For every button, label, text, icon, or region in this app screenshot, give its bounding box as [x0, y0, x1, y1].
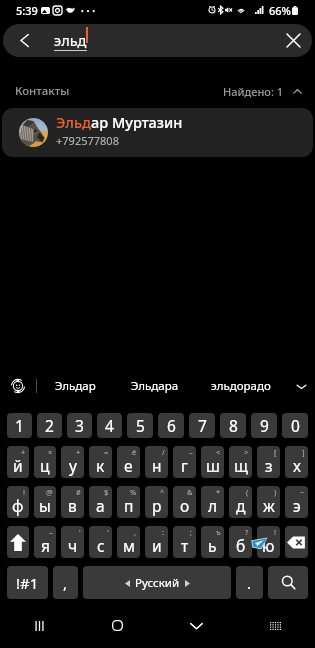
staticText: 5:39	[16, 3, 38, 18]
staticText: м	[123, 535, 135, 556]
button[interactable]: Shift	[7, 526, 29, 558]
button[interactable]: /	[145, 446, 168, 478]
staticText: !	[23, 487, 26, 497]
staticText: 6	[167, 415, 176, 436]
staticText: эльд	[54, 30, 87, 50]
staticText: 66%	[269, 3, 291, 18]
staticText: ,	[134, 527, 137, 537]
staticText: к	[96, 455, 105, 476]
button[interactable]: *	[201, 486, 224, 518]
staticText: Эльдар Муртазин	[56, 112, 183, 132]
button[interactable]: '	[89, 526, 112, 558]
staticText: ;	[190, 527, 193, 537]
button[interactable]: Backspace	[285, 526, 308, 558]
button[interactable]: >	[229, 446, 252, 478]
staticText: щ	[234, 455, 248, 476]
button[interactable]: Recents	[0, 603, 78, 648]
staticText: ,	[63, 573, 68, 593]
button[interactable]: More suggestions	[287, 370, 315, 402]
button[interactable]: 6	[158, 413, 184, 438]
button[interactable]: –	[173, 446, 196, 478]
staticText: ё	[132, 447, 137, 457]
button[interactable]: 5	[127, 413, 153, 438]
button[interactable]: !#1	[7, 566, 48, 599]
button[interactable]: !	[257, 526, 280, 558]
button[interactable]: %	[117, 486, 140, 518]
button[interactable]: 8	[220, 413, 246, 438]
button[interactable]: 2	[37, 413, 62, 438]
button[interactable]: (	[229, 486, 252, 518]
button[interactable]: Hide keyboard	[157, 603, 236, 648]
button[interactable]: :	[145, 526, 168, 558]
staticText: [	[274, 447, 277, 457]
staticText: ×	[48, 447, 53, 457]
button[interactable]: 7	[189, 413, 215, 438]
staticText: е	[124, 455, 133, 476]
button[interactable]: &	[173, 486, 196, 518]
button[interactable]: 9	[251, 413, 277, 438]
staticText: Эльдара	[131, 378, 179, 394]
button[interactable]: +	[61, 446, 84, 478]
button[interactable]: #	[61, 486, 84, 518]
button[interactable]: @	[34, 486, 56, 518]
button[interactable]: !	[7, 486, 29, 518]
button[interactable]: 0	[282, 413, 308, 438]
button[interactable]: Эльдара	[114, 370, 195, 402]
staticText: +	[76, 447, 81, 457]
staticText: %	[130, 487, 137, 497]
staticText: Найдено: 1	[223, 84, 284, 99]
button[interactable]: Back	[3, 24, 45, 57]
staticText: 4	[105, 415, 114, 436]
staticText: с	[97, 535, 105, 556]
button[interactable]: '	[61, 526, 84, 558]
button[interactable]: ?	[229, 526, 252, 558]
staticText: (	[246, 487, 249, 497]
staticText: ы	[39, 495, 51, 516]
staticText: я	[41, 535, 50, 556]
button[interactable]: Emoji	[0, 370, 36, 402]
staticText: 1	[15, 415, 24, 436]
staticText: Русский	[135, 575, 180, 591]
button[interactable]: Home	[78, 603, 157, 648]
button[interactable]: ×	[34, 446, 56, 478]
button[interactable]: эльдорадо	[195, 370, 287, 402]
button[interactable]: ^	[145, 486, 168, 518]
staticText: х	[293, 455, 301, 476]
button[interactable]: 1	[7, 413, 32, 438]
button[interactable]: ,	[53, 566, 78, 599]
staticText: 3	[75, 415, 84, 436]
button[interactable]: <	[201, 446, 224, 478]
staticText: ч	[68, 535, 78, 556]
button[interactable]: Search	[268, 566, 308, 599]
button[interactable]: ъ	[201, 526, 224, 558]
button[interactable]: +	[7, 446, 29, 478]
button[interactable]: [	[257, 446, 280, 478]
button[interactable]: Collapse	[290, 84, 304, 98]
button[interactable]: Keyboard layout	[236, 603, 315, 648]
staticText: з	[265, 455, 273, 476]
staticText: >	[244, 447, 249, 457]
staticText: <	[216, 447, 221, 457]
button[interactable]: ё	[117, 446, 140, 478]
staticText: и	[152, 535, 162, 556]
button[interactable]: .	[236, 566, 263, 599]
button[interactable]: ;	[173, 526, 196, 558]
button[interactable]: Русский	[83, 566, 231, 599]
button[interactable]: 4	[97, 413, 122, 438]
button[interactable]: ]	[285, 446, 308, 478]
button[interactable]: )	[257, 486, 280, 518]
button[interactable]: Эльдар Муртазин	[2, 108, 313, 157]
staticText: 5	[136, 415, 145, 436]
button[interactable]: –	[34, 526, 56, 558]
button[interactable]: Clear search	[274, 24, 312, 57]
button[interactable]: 3	[67, 413, 92, 438]
button[interactable]: ~	[285, 486, 308, 518]
staticText: в	[68, 495, 77, 516]
staticText: ш	[206, 455, 220, 476]
button[interactable]: ,	[117, 526, 140, 558]
button[interactable]: =	[89, 446, 112, 478]
staticText: :	[162, 527, 165, 537]
staticText: л	[208, 495, 218, 516]
button[interactable]: $	[89, 486, 112, 518]
button[interactable]: Эльдар	[37, 370, 114, 402]
